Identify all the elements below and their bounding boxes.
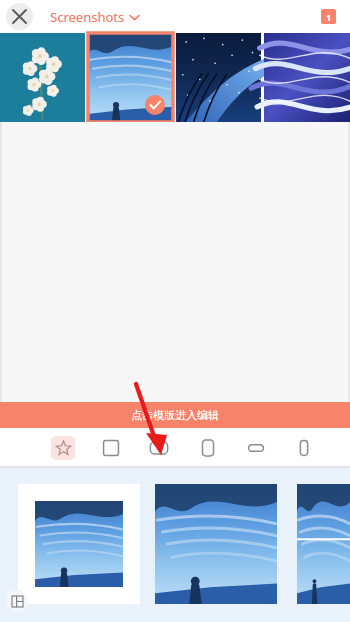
staticText: 1 <box>326 11 332 23</box>
button[interactable]: Photo 2 selected <box>88 33 173 122</box>
button[interactable]: Favorites <box>45 430 81 466</box>
staticText: 点击模版进入编辑 <box>131 408 219 422</box>
button[interactable]: Square template <box>93 430 129 466</box>
button[interactable]: Template <box>155 484 277 604</box>
button[interactable]: Photo 1 <box>0 33 85 122</box>
button[interactable]: Screenshots <box>50 8 139 26</box>
button[interactable]: Tall template <box>286 430 322 466</box>
button[interactable]: Photo 3 <box>176 33 261 122</box>
button[interactable]: Layout options <box>6 590 28 612</box>
staticText: Screenshots <box>50 8 125 26</box>
button[interactable]: Portrait template <box>190 430 226 466</box>
button[interactable]: 1 <box>321 9 336 24</box>
button[interactable]: 点击模版进入编辑 <box>0 402 350 428</box>
button[interactable]: Close <box>6 3 33 30</box>
button[interactable]: Template <box>18 484 140 604</box>
button[interactable]: Landscape template <box>141 430 177 466</box>
button[interactable]: Wide template <box>238 430 274 466</box>
button[interactable]: Photo 4 <box>264 33 350 122</box>
button[interactable]: Template <box>297 484 350 604</box>
